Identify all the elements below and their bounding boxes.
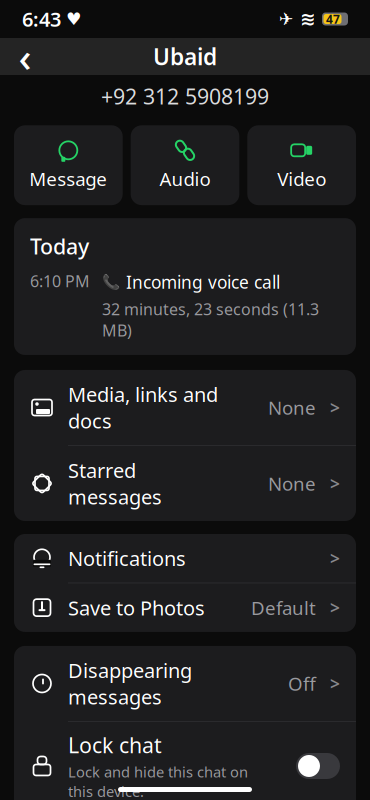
button[interactable]: Message [14, 125, 123, 205]
staticText: Notifications [68, 545, 186, 572]
staticText: 6:10 PM [30, 270, 90, 292]
staticText: 6:43 [22, 6, 61, 32]
staticText: > [330, 472, 340, 495]
staticText: 47 [326, 11, 340, 27]
button[interactable]: Starred messages [14, 446, 356, 521]
staticText: Message [29, 166, 107, 191]
staticText: None [268, 395, 316, 420]
staticText: Disappearing messages [68, 657, 192, 710]
staticText: 32 minutes, 23 seconds (11.3 MB) [102, 298, 319, 341]
button[interactable]: Save to Photos [14, 583, 356, 632]
staticText: ✈ [279, 9, 294, 29]
staticText: > [330, 672, 340, 695]
staticText: > [330, 396, 340, 419]
staticText: Media, links and docs [68, 381, 218, 434]
button[interactable]: Media, links and docs [14, 370, 356, 445]
button[interactable]: Audio [131, 125, 239, 205]
button[interactable]: Video [247, 125, 356, 205]
staticText: 📞 [102, 274, 120, 290]
staticText: > [330, 596, 340, 619]
button[interactable]: Notifications [14, 534, 356, 583]
staticText: Default [251, 595, 316, 620]
staticText: Today [30, 232, 89, 260]
button[interactable]: Lock chat [14, 722, 356, 800]
button[interactable]: Disappearing messages [14, 646, 356, 721]
staticText: Video [277, 166, 326, 191]
staticText: +92 312 5908199 [101, 82, 269, 110]
staticText: Off [288, 671, 316, 696]
staticText: Audio [159, 166, 210, 191]
staticText: Lock chat [68, 731, 162, 759]
staticText: Lock and hide this chat on this device. [68, 762, 248, 800]
staticText: Ubaid [153, 41, 217, 71]
staticText: > [330, 547, 340, 570]
staticText: ≋ [300, 8, 316, 30]
staticText: Incoming voice call [126, 270, 280, 293]
staticText: ‹ [18, 30, 31, 83]
staticText: Starred messages [68, 457, 162, 510]
staticText: ♥ [66, 9, 82, 29]
staticText: Save to Photos [68, 594, 205, 621]
button[interactable]: Back [6, 38, 44, 74]
staticText: None [268, 471, 316, 496]
